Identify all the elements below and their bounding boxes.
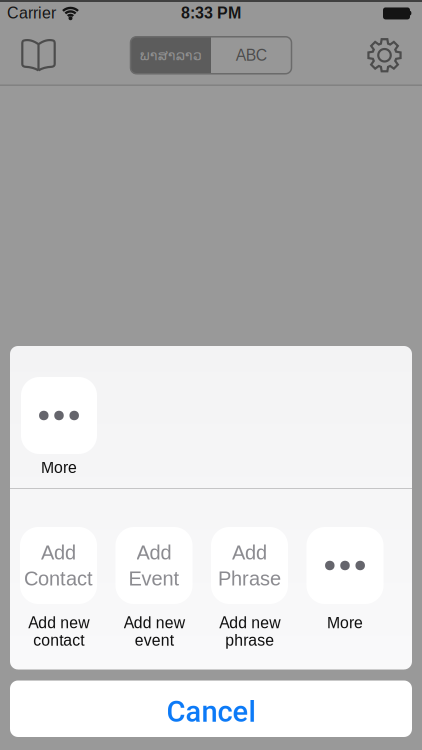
staticText: Add	[136, 541, 171, 564]
staticText: Add new contact	[28, 614, 89, 649]
button[interactable]: Add	[115, 527, 192, 650]
staticText: ABC	[236, 46, 267, 64]
staticText: Add new event	[123, 614, 184, 649]
staticText: Contact	[24, 567, 93, 590]
staticText: Carrier	[7, 4, 56, 22]
staticText: Add	[232, 541, 267, 564]
staticText: More	[41, 459, 77, 476]
staticText: ພາສາລາວ	[140, 47, 202, 64]
button[interactable]: More	[306, 527, 383, 650]
button[interactable]: Cancel	[10, 680, 412, 737]
button[interactable]: Settings	[367, 38, 402, 73]
button[interactable]: Add	[211, 527, 288, 650]
staticText: Cancel	[166, 695, 255, 729]
staticText: Add new phrase	[219, 614, 280, 649]
button[interactable]: Add	[20, 527, 97, 650]
staticText: Phrase	[218, 567, 281, 590]
button[interactable]: ABC	[211, 37, 291, 74]
button[interactable]: Bookmarks	[19, 38, 55, 72]
staticText: Add	[41, 541, 76, 564]
button[interactable]: ພາສາລາວ	[130, 37, 211, 74]
staticText: More	[327, 614, 363, 632]
button[interactable]: More	[21, 377, 97, 477]
staticText: 8:33 PM	[181, 4, 241, 22]
staticText: Event	[128, 567, 179, 590]
